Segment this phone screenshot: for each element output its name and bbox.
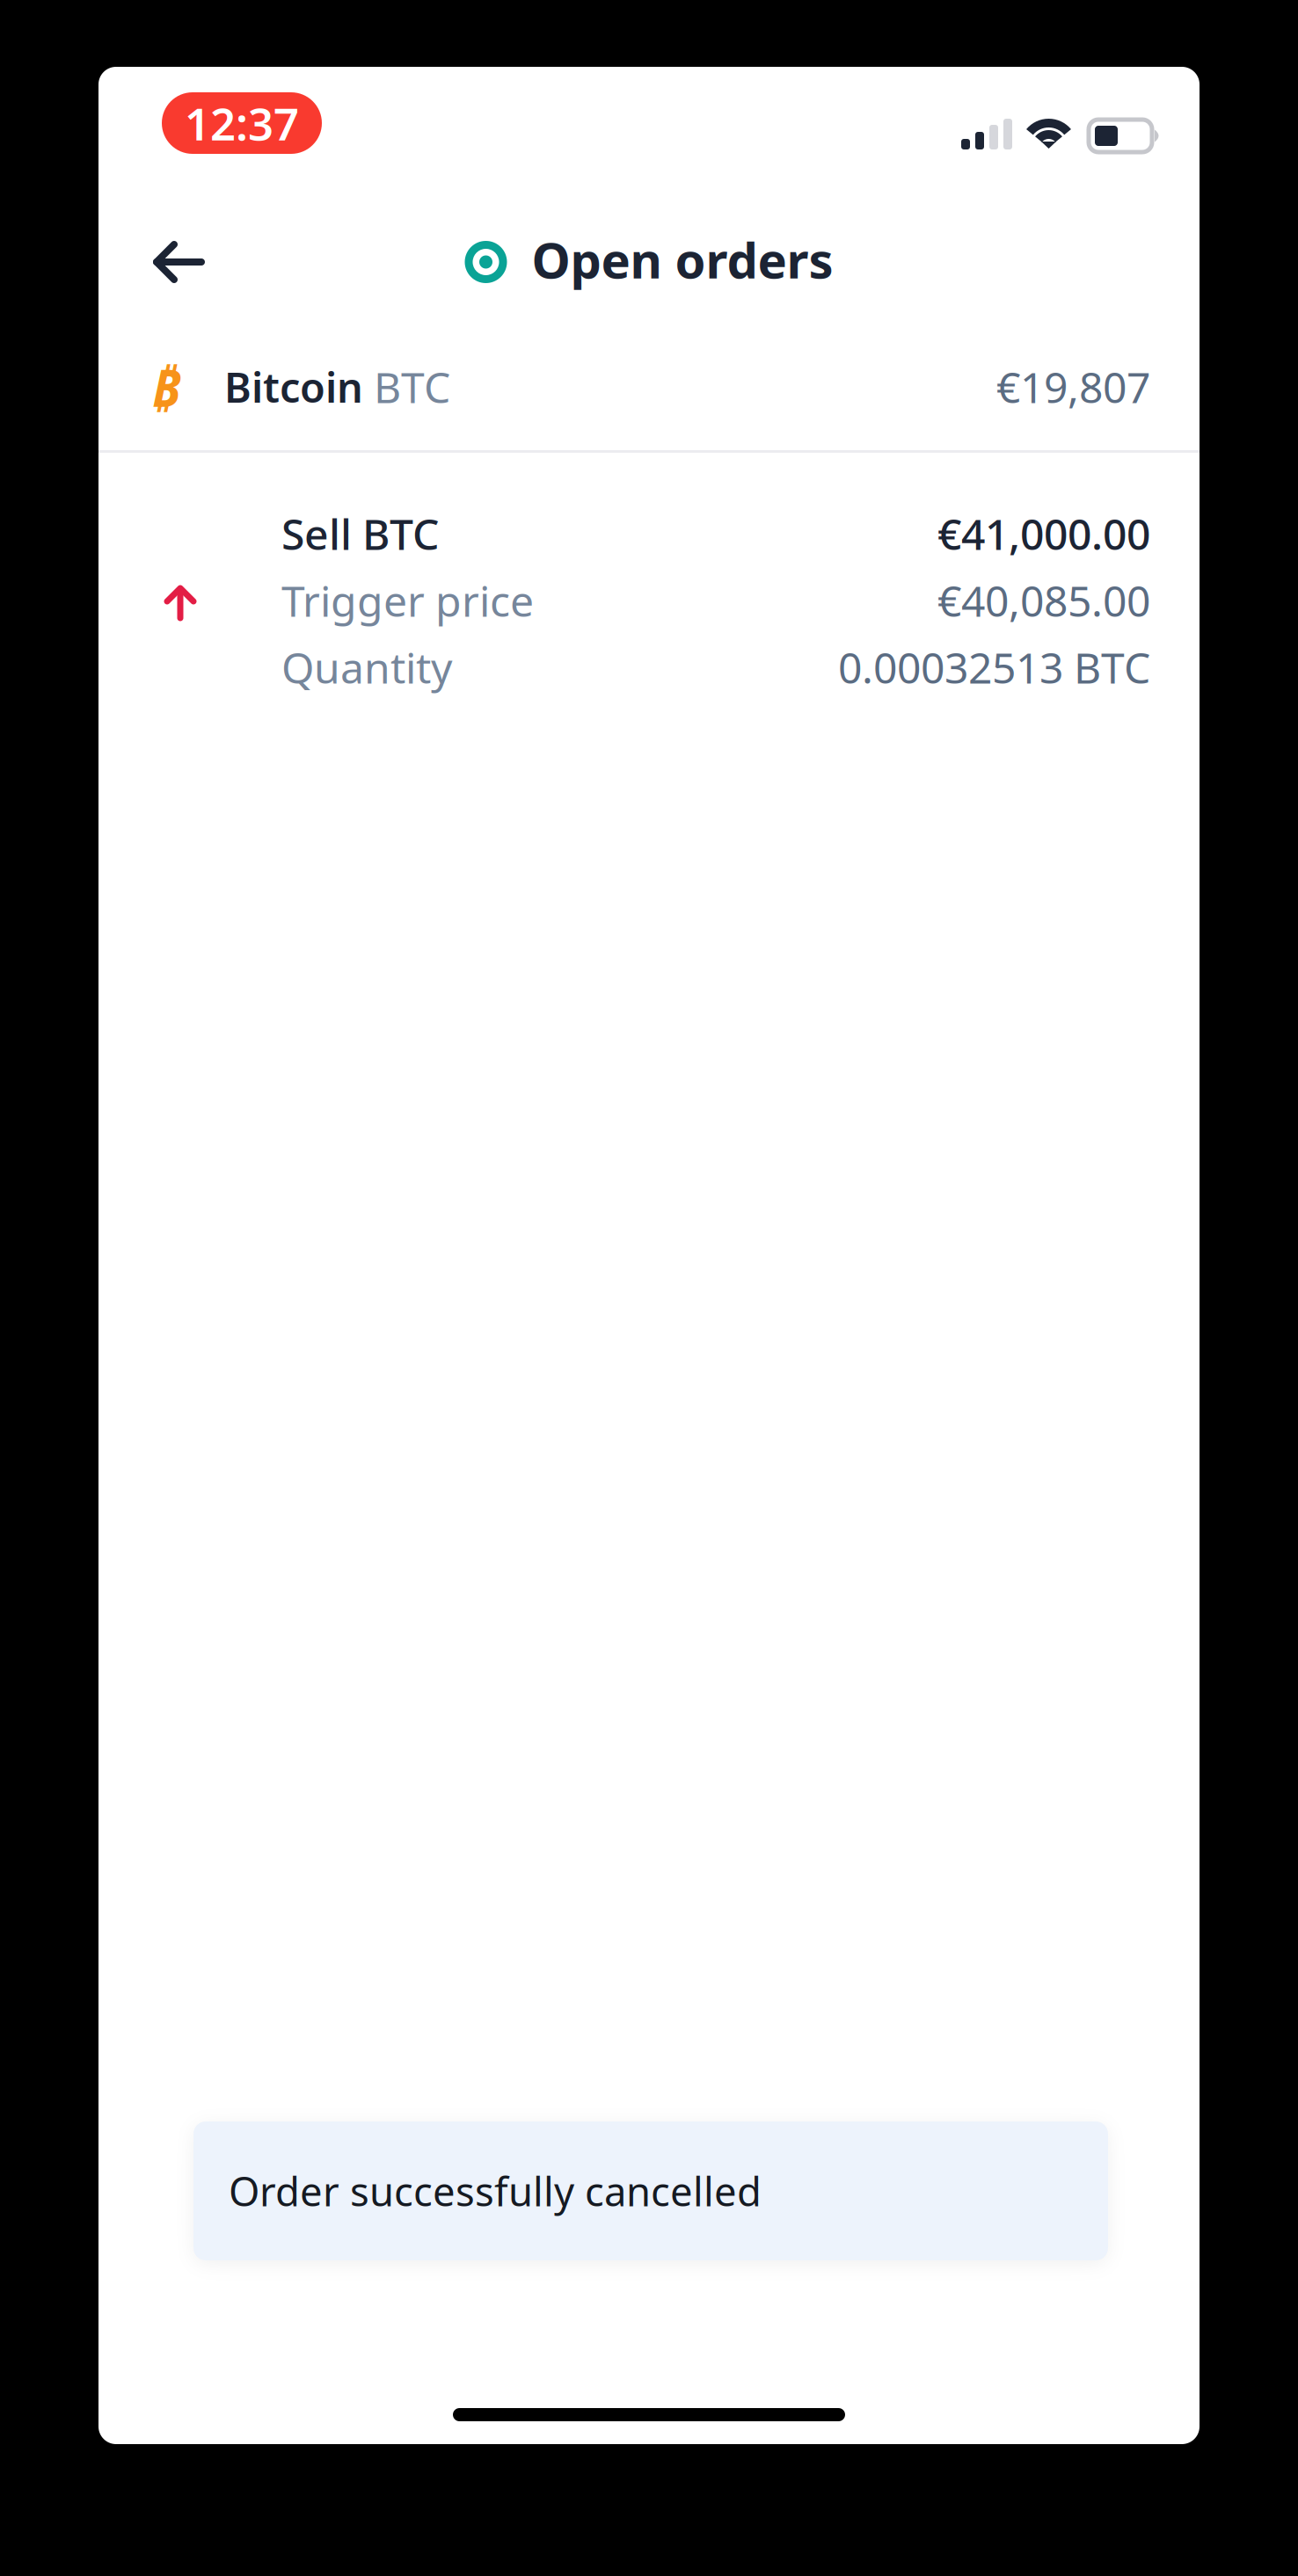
staticText: Trigger price	[281, 572, 534, 628]
button[interactable]: ₿	[98, 354, 1200, 419]
staticText: 12:37	[185, 94, 299, 153]
staticText: Quantity	[281, 639, 452, 695]
staticText: ₿	[152, 353, 180, 421]
staticText: 0.00032513 BTC	[838, 639, 1150, 695]
staticText: €41,000.00	[937, 506, 1150, 562]
staticText: €40,085.00	[937, 572, 1150, 628]
button[interactable]: Sell BTC	[98, 467, 1200, 713]
staticText: Bitcoin	[224, 360, 363, 414]
staticText: €19,807	[996, 359, 1150, 415]
staticText: Open orders	[532, 227, 833, 292]
staticText: Order successfully cancelled	[229, 2164, 762, 2217]
staticText: Sell BTC	[281, 506, 439, 562]
staticText: BTC	[374, 359, 450, 415]
button[interactable]: Back	[126, 222, 230, 302]
